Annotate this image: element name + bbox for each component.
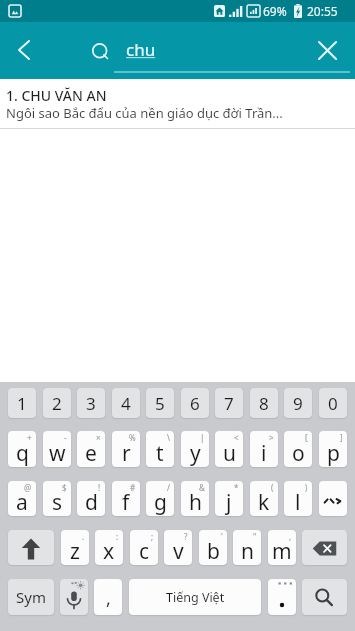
staticText: w <box>49 439 66 467</box>
button[interactable]: , <box>94 579 122 615</box>
button[interactable]: 2 <box>43 388 71 418</box>
button[interactable]: Period <box>268 579 296 615</box>
staticText: 69% <box>263 3 287 19</box>
staticText: 1. CHU VĂN AN <box>6 86 107 105</box>
button[interactable]: / <box>146 481 174 516</box>
staticText: , <box>289 531 292 542</box>
button[interactable]: Backspace <box>302 530 347 565</box>
staticText: + <box>27 432 32 443</box>
button[interactable]: # <box>112 481 140 516</box>
button[interactable]: Back <box>0 26 48 74</box>
staticText: ; <box>151 531 154 542</box>
button[interactable]: : <box>95 530 123 565</box>
button[interactable]: " <box>233 530 261 565</box>
button[interactable]: 8 <box>250 388 278 418</box>
button[interactable]: ) <box>284 481 312 516</box>
button[interactable]: 4 <box>112 388 140 418</box>
staticText: Tiếng Việt <box>166 589 225 606</box>
button[interactable]: Search <box>302 579 347 615</box>
staticText: ) <box>305 482 308 493</box>
button[interactable]: ] <box>319 431 347 467</box>
staticText: e <box>85 439 97 467</box>
staticText: k <box>258 488 270 516</box>
staticText: d <box>85 488 98 516</box>
button[interactable]: ( <box>250 481 278 516</box>
staticText: ( <box>271 482 274 493</box>
button[interactable]: | <box>181 431 209 467</box>
button[interactable]: , <box>268 530 296 565</box>
staticText: @ <box>24 482 32 493</box>
staticText: > <box>269 432 274 443</box>
staticText: n <box>241 537 254 565</box>
staticText: 5 <box>155 392 165 415</box>
button[interactable]: Voice input <box>60 579 88 615</box>
staticText: b <box>207 537 220 565</box>
button[interactable]: * <box>215 481 243 516</box>
button[interactable]: ! <box>77 481 105 516</box>
staticText: \ <box>167 432 170 443</box>
button[interactable]: Clear search <box>303 26 351 74</box>
staticText: : <box>116 531 119 542</box>
staticText: , <box>106 586 111 611</box>
button[interactable]: Sym <box>8 579 54 615</box>
button[interactable]: 9 <box>284 388 312 418</box>
button[interactable]: 1. CHU VĂN AN <box>0 79 355 129</box>
staticText: | <box>200 432 205 443</box>
staticText: 1 <box>17 392 27 415</box>
staticText: % <box>129 432 136 443</box>
staticText: # <box>130 482 136 493</box>
staticText: y <box>190 439 201 467</box>
button[interactable]: < <box>215 431 243 467</box>
button[interactable]: × <box>77 431 105 467</box>
button[interactable]: Vietnamese tone marks <box>319 481 347 516</box>
staticText: c <box>139 537 150 565</box>
button[interactable]: 0 <box>319 388 347 418</box>
staticText: s <box>52 488 63 516</box>
button[interactable]: & <box>181 481 209 516</box>
button[interactable]: 5 <box>146 388 174 418</box>
button[interactable]: Tiếng Việt <box>129 579 261 615</box>
button[interactable]: ' <box>199 530 227 565</box>
staticText: i <box>261 439 267 467</box>
staticText: - <box>64 432 67 443</box>
button[interactable]: 7 <box>215 388 243 418</box>
staticText: 8 <box>259 392 269 415</box>
button[interactable]: > <box>250 431 278 467</box>
button[interactable]: Shift <box>8 530 54 565</box>
staticText: 2 <box>52 392 62 415</box>
button[interactable]: 1 <box>8 388 36 418</box>
button[interactable]: 6 <box>181 388 209 418</box>
staticText: 4 <box>121 392 131 415</box>
staticText: * <box>234 482 239 493</box>
staticText: 3 <box>86 392 96 415</box>
button[interactable]: $ <box>43 481 71 516</box>
staticText: ? <box>184 531 188 542</box>
button[interactable]: . <box>61 530 89 565</box>
button[interactable]: @ <box>8 481 36 516</box>
staticText: ' <box>221 531 223 542</box>
staticText: $ <box>62 482 67 493</box>
staticText: o <box>292 439 305 467</box>
staticText: g <box>154 488 167 516</box>
button[interactable]: ? <box>164 530 192 565</box>
staticText: 20:55 <box>307 3 338 19</box>
staticText: r <box>122 439 131 467</box>
button[interactable]: ; <box>130 530 158 565</box>
staticText: m <box>272 537 292 565</box>
staticText: ] <box>340 432 343 443</box>
button[interactable]: [ <box>284 431 312 467</box>
staticText: h <box>189 488 202 516</box>
staticText: Sym <box>16 587 46 607</box>
staticText: [ <box>305 432 308 443</box>
staticText: × <box>96 432 101 443</box>
button[interactable]: + <box>8 431 36 467</box>
staticText: l <box>295 488 301 516</box>
staticText: p <box>327 439 340 467</box>
button[interactable]: 3 <box>77 388 105 418</box>
button[interactable]: - <box>43 431 71 467</box>
staticText: < <box>234 432 239 443</box>
staticText: 0 <box>328 392 338 415</box>
button[interactable]: % <box>112 431 140 467</box>
staticText: x <box>103 537 115 565</box>
button[interactable]: \ <box>146 431 174 467</box>
